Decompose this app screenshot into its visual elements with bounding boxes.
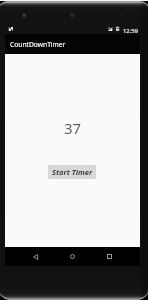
staticText: 37	[5, 118, 140, 138]
button[interactable]: Start Timer	[48, 165, 96, 179]
button[interactable]: Home	[61, 247, 83, 266]
staticText: Start Timer	[52, 167, 93, 177]
button[interactable]: Back	[24, 247, 46, 266]
staticText: 12:59	[123, 27, 138, 35]
staticText: CountDownTimer	[10, 40, 66, 49]
button[interactable]: Recent apps	[98, 247, 120, 266]
